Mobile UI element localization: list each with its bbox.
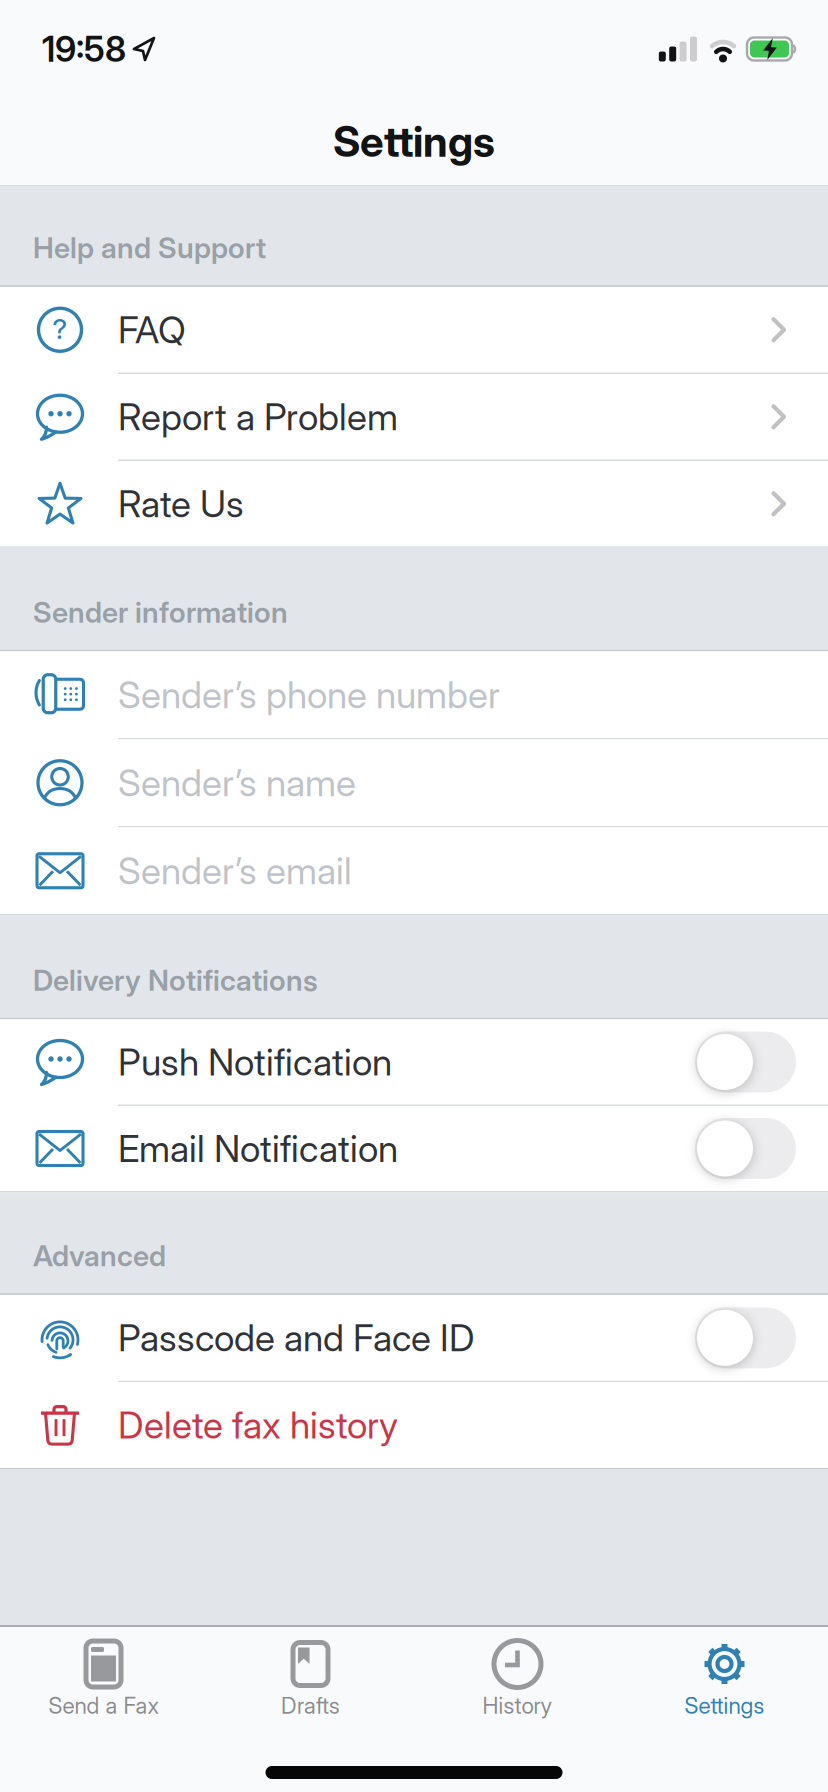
button[interactable]: History — [414, 1640, 621, 1719]
staticText: Sender’s email — [118, 848, 352, 893]
button[interactable]: Toggle — [695, 1031, 796, 1092]
staticText: Settings — [333, 116, 495, 167]
staticText: 19:58 — [42, 28, 126, 70]
staticText: Send a Fax — [48, 1692, 158, 1719]
button[interactable]: Sender’s name — [0, 739, 828, 826]
button[interactable]: Email Notification — [0, 1106, 828, 1191]
staticText: FAQ — [118, 307, 186, 352]
staticText: Help and Support — [33, 230, 266, 265]
button[interactable]: Sender’s phone number — [0, 651, 828, 738]
button[interactable]: Passcode and Face ID — [0, 1295, 828, 1381]
button[interactable]: Report a Problem — [0, 374, 828, 459]
staticText: Email Notification — [118, 1126, 398, 1171]
staticText: History — [482, 1692, 552, 1719]
button[interactable]: Drafts — [207, 1640, 414, 1719]
staticText: Delete fax history — [118, 1403, 398, 1447]
staticText: Push Notification — [118, 1040, 392, 1084]
button[interactable]: Toggle — [695, 1307, 796, 1368]
button[interactable]: Delete fax history — [0, 1382, 828, 1468]
button[interactable]: Send a Fax — [0, 1640, 207, 1719]
staticText: Rate Us — [118, 481, 244, 526]
button[interactable]: Toggle — [695, 1118, 796, 1179]
staticText: Drafts — [281, 1692, 340, 1719]
staticText: Settings — [684, 1692, 764, 1719]
staticText: Report a Problem — [118, 394, 398, 439]
button[interactable]: Push Notification — [0, 1019, 828, 1104]
staticText: Passcode and Face ID — [118, 1315, 475, 1360]
button[interactable]: Sender’s email — [0, 827, 828, 914]
staticText: Sender’s name — [118, 760, 356, 805]
button[interactable]: ? — [0, 287, 828, 372]
button[interactable]: Settings — [621, 1640, 828, 1719]
button[interactable]: Rate Us — [0, 461, 828, 546]
staticText: Sender information — [33, 595, 288, 630]
staticText: Sender’s phone number — [118, 672, 500, 717]
staticText: Delivery Notifications — [33, 963, 318, 998]
staticText: ? — [52, 313, 67, 346]
staticText: Advanced — [33, 1238, 166, 1273]
